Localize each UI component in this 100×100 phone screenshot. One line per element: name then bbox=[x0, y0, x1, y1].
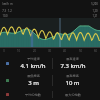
staticText: 7.3 km/h bbox=[60, 62, 86, 70]
button[interactable]: Speed and elevation chart bbox=[0, 18, 100, 48]
staticText: 30 bbox=[48, 49, 51, 53]
staticText: 最大心拍数 bbox=[65, 93, 81, 97]
staticText: 1,20 bbox=[92, 9, 98, 13]
staticText: 10.0 bbox=[2, 14, 8, 18]
staticText: 4.1 km/h bbox=[20, 62, 46, 70]
staticText: 最低標高 bbox=[27, 74, 40, 78]
staticText: 40 bbox=[63, 49, 66, 53]
staticText: 7.3 1.2 bbox=[2, 9, 12, 13]
button[interactable]: 平均速度 bbox=[0, 55, 100, 72]
staticText: 0 bbox=[3, 49, 5, 53]
staticText: 60 bbox=[94, 49, 97, 53]
staticText: 10 m bbox=[65, 79, 80, 87]
staticText: 20 bbox=[33, 49, 36, 53]
staticText: 1,21 bbox=[92, 14, 98, 18]
staticText: 10 bbox=[17, 49, 20, 53]
staticText: 50 bbox=[79, 49, 82, 53]
staticText: 最高標高 bbox=[66, 74, 79, 78]
button[interactable]: 平均心拍数 bbox=[0, 89, 100, 100]
staticText: 最高速度 bbox=[66, 57, 79, 61]
staticText: 3 m bbox=[28, 79, 39, 87]
button[interactable]: 最低標高 bbox=[0, 72, 100, 89]
staticText: 5,200 bbox=[91, 2, 98, 6]
staticText: 平均速度 bbox=[27, 57, 40, 61]
staticText: 平均心拍数 bbox=[25, 93, 41, 97]
staticText: km/h m bbox=[2, 2, 13, 6]
